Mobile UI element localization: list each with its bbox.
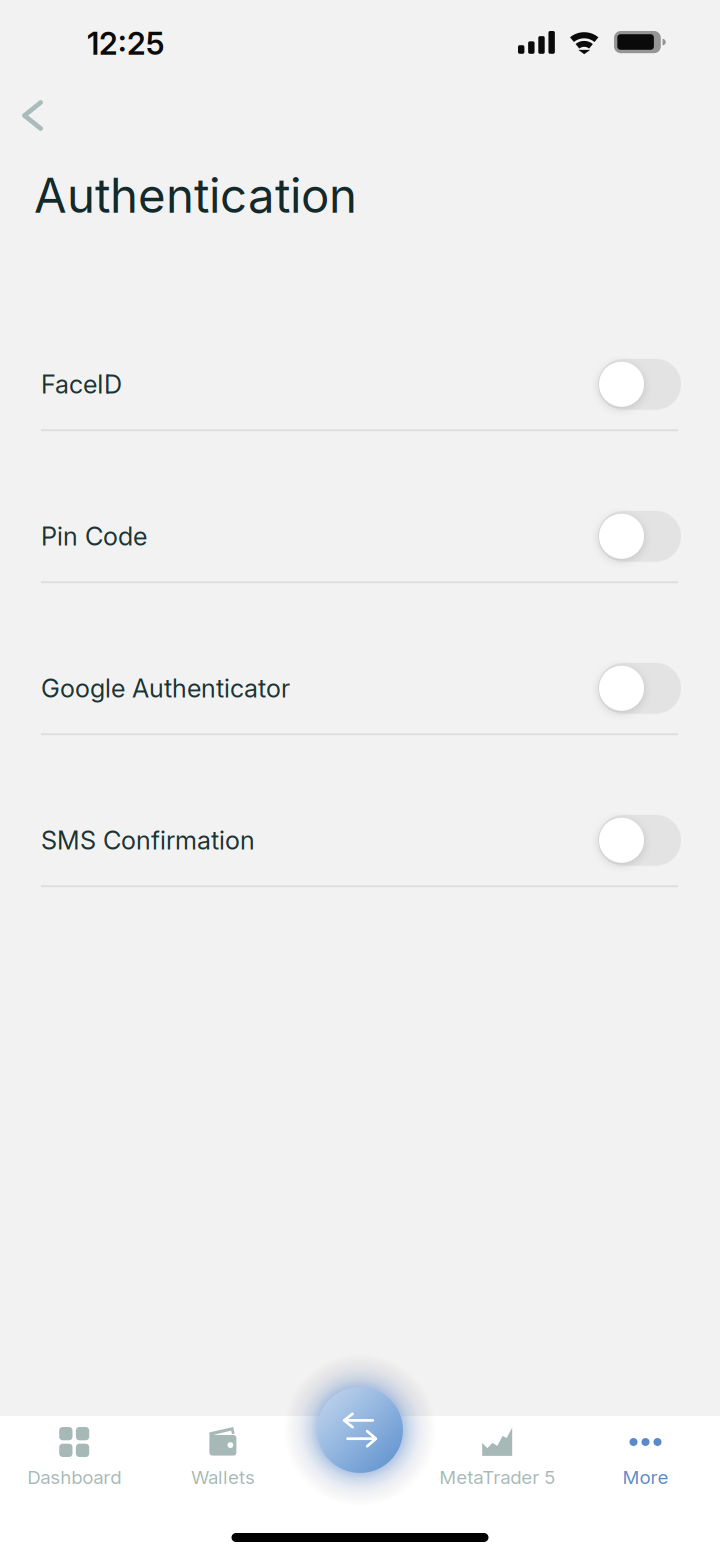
button[interactable]: Dashboard xyxy=(0,1427,148,1527)
staticText: SMS Confirmation xyxy=(41,825,255,856)
staticText: Dashboard xyxy=(27,1466,121,1489)
button[interactable]: Back xyxy=(0,86,90,160)
button[interactable]: More xyxy=(571,1427,720,1527)
button[interactable]: FaceID xyxy=(41,339,681,491)
button[interactable]: Transfer xyxy=(284,1354,436,1506)
staticText: More xyxy=(622,1466,668,1489)
staticText: FaceID xyxy=(41,369,122,400)
button[interactable]: SMS Confirmation xyxy=(41,795,681,947)
button[interactable]: Pin Code xyxy=(41,491,681,643)
staticText: MetaTrader 5 xyxy=(439,1466,555,1489)
staticText: Pin Code xyxy=(41,521,147,552)
staticText: Authentication xyxy=(34,167,357,224)
button[interactable]: Wallets xyxy=(148,1427,297,1527)
button[interactable]: Google Authenticator xyxy=(41,643,681,795)
staticText: Wallets xyxy=(191,1466,255,1489)
staticText: 12:25 xyxy=(87,25,164,62)
staticText: Google Authenticator xyxy=(41,673,290,704)
button[interactable]: MetaTrader 5 xyxy=(423,1427,571,1527)
